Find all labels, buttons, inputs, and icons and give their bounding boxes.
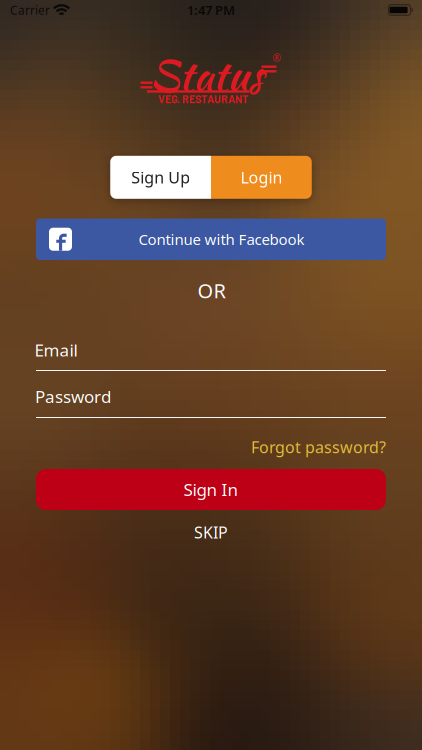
- staticText: Status: [149, 44, 263, 106]
- staticText: Email: [34, 338, 77, 362]
- staticText: Login: [240, 166, 282, 188]
- staticText: Password: [35, 385, 111, 408]
- button[interactable]: Sign In: [36, 469, 386, 510]
- button[interactable]: Sign Up: [110, 156, 211, 199]
- staticText: VEG. RESTAURANT: [158, 93, 248, 105]
- staticText: SKIP: [194, 521, 228, 543]
- button[interactable]: Forgot password?: [251, 436, 386, 458]
- staticText: Continue with Facebook: [138, 229, 304, 249]
- button[interactable]: Continue with Facebook: [36, 218, 386, 260]
- staticText: Forgot password?: [251, 436, 386, 458]
- staticText: Sign Up: [131, 166, 190, 188]
- staticText: 1:47 PM: [187, 1, 235, 19]
- staticText: ®: [272, 51, 280, 65]
- button[interactable]: SKIP: [194, 521, 228, 543]
- staticText: Carrier: [10, 2, 50, 18]
- staticText: Sign In: [183, 478, 238, 501]
- button[interactable]: Login: [211, 156, 312, 199]
- staticText: OR: [197, 277, 225, 304]
